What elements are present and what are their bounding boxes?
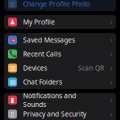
staticText: 📞 bbox=[8, 50, 16, 58]
staticText: › bbox=[110, 95, 112, 105]
staticText: › bbox=[110, 63, 112, 73]
button[interactable]: ♟ bbox=[4, 15, 116, 29]
staticText: › bbox=[110, 109, 112, 119]
staticText: › bbox=[110, 35, 112, 45]
staticText: Chat Folders bbox=[23, 78, 62, 86]
staticText: ▥ bbox=[9, 64, 15, 72]
staticText: Change Profile Photo bbox=[23, 0, 90, 8]
staticText: My Profile bbox=[23, 18, 55, 26]
staticText: › bbox=[110, 49, 112, 59]
button[interactable]: ▯ bbox=[4, 107, 116, 120]
staticText: ◎ bbox=[9, 0, 15, 8]
staticText: ▯ bbox=[10, 110, 14, 118]
staticText: Devices bbox=[23, 64, 47, 72]
staticText: Notifications and Sounds bbox=[23, 91, 76, 109]
staticText: ▤ bbox=[9, 78, 15, 86]
staticText: Recent Calls bbox=[23, 50, 61, 58]
button[interactable]: ▮ bbox=[4, 93, 116, 107]
staticText: ♟ bbox=[9, 18, 15, 26]
staticText: › bbox=[110, 77, 112, 87]
button[interactable]: 🔖 bbox=[4, 33, 116, 47]
staticText: Saved Messages bbox=[23, 36, 75, 44]
button[interactable]: ◎ bbox=[4, 0, 116, 11]
staticText: Privacy and Security bbox=[23, 110, 86, 118]
staticText: ▮ bbox=[10, 96, 14, 104]
button[interactable]: ▥ bbox=[4, 61, 116, 75]
staticText: 🔖 bbox=[8, 36, 16, 44]
button[interactable]: 📞 bbox=[4, 47, 116, 61]
staticText: › bbox=[110, 17, 112, 27]
staticText: Scan QR bbox=[78, 64, 104, 72]
button[interactable]: ▤ bbox=[4, 75, 116, 89]
